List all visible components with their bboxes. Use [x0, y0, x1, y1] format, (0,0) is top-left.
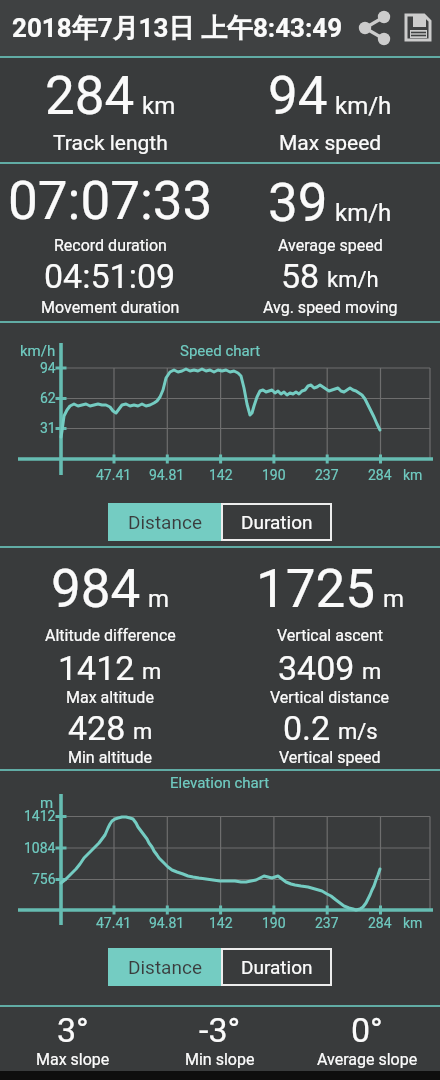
- staticText: km: [142, 92, 176, 120]
- staticText: 3°: [57, 1010, 89, 1050]
- staticText: m: [383, 585, 405, 613]
- staticText: Min slope: [185, 1050, 255, 1069]
- staticText: Vertical speed: [279, 748, 381, 767]
- staticText: Max speed: [279, 131, 382, 156]
- staticText: km: [403, 467, 423, 483]
- staticText: km/h: [335, 92, 392, 120]
- staticText: 47.41: [96, 915, 132, 931]
- staticText: 284: [368, 467, 392, 483]
- staticText: 62: [40, 390, 56, 406]
- staticText: Average slope: [317, 1050, 418, 1069]
- staticText: 94.81: [149, 915, 185, 931]
- staticText: m/s: [338, 719, 378, 745]
- staticText: 1725: [256, 558, 376, 620]
- staticText: km: [403, 915, 423, 931]
- staticText: 1412: [58, 648, 135, 688]
- staticText: 94: [40, 360, 56, 376]
- button[interactable]: [350, 6, 396, 52]
- staticText: m: [148, 585, 170, 613]
- button[interactable]: Duration: [221, 948, 332, 986]
- button[interactable]: [398, 6, 440, 52]
- staticText: m: [362, 659, 382, 685]
- staticText: 284: [368, 915, 392, 931]
- button[interactable]: Distance: [108, 948, 221, 986]
- button[interactable]: Duration: [221, 503, 332, 541]
- staticText: m: [40, 794, 54, 812]
- staticText: Vertical ascent: [277, 626, 384, 645]
- staticText: 07:07:33: [8, 170, 213, 232]
- staticText: 58: [281, 256, 320, 296]
- staticText: Movement duration: [41, 298, 180, 317]
- staticText: 94.81: [149, 467, 185, 483]
- staticText: 142: [209, 915, 233, 931]
- staticText: km/h: [335, 199, 392, 227]
- staticText: 428: [68, 708, 126, 748]
- staticText: km/h: [327, 267, 379, 293]
- staticText: Speed chart: [180, 342, 261, 360]
- staticText: m: [142, 659, 162, 685]
- staticText: Duration: [241, 956, 313, 978]
- staticText: Avg. speed moving: [263, 298, 398, 317]
- staticText: Altitude difference: [45, 626, 176, 645]
- staticText: Distance: [128, 956, 202, 978]
- staticText: 2018年7月13日 上午8:43:49: [12, 12, 343, 45]
- staticText: Max altitude: [66, 688, 154, 707]
- staticText: Max slope: [36, 1050, 110, 1069]
- staticText: 756: [32, 871, 56, 887]
- staticText: m: [133, 719, 153, 745]
- staticText: 0°: [351, 1010, 383, 1050]
- staticText: Record duration: [54, 236, 167, 255]
- button[interactable]: Distance: [108, 503, 221, 541]
- staticText: Elevation chart: [170, 774, 270, 792]
- staticText: 04:51:09: [44, 256, 176, 296]
- staticText: Distance: [128, 511, 202, 533]
- staticText: 190: [262, 467, 286, 483]
- staticText: Duration: [241, 511, 313, 533]
- staticText: 47.41: [96, 467, 132, 483]
- staticText: 142: [209, 467, 233, 483]
- staticText: 237: [315, 915, 339, 931]
- staticText: 284: [45, 65, 135, 127]
- staticText: Track length: [53, 131, 168, 156]
- staticText: 31: [40, 420, 56, 436]
- staticText: 94: [268, 65, 328, 127]
- staticText: Min altitude: [68, 748, 152, 767]
- staticText: 1412: [24, 808, 56, 824]
- staticText: 0.2: [283, 708, 331, 748]
- staticText: 984: [51, 558, 141, 620]
- staticText: Average speed: [278, 236, 383, 255]
- staticText: -3°: [199, 1010, 241, 1050]
- staticText: 190: [262, 915, 286, 931]
- staticText: km/h: [20, 342, 56, 360]
- staticText: Vertical distance: [270, 688, 390, 707]
- staticText: 39: [268, 172, 328, 234]
- staticText: 3409: [278, 648, 355, 688]
- staticText: 237: [315, 467, 339, 483]
- staticText: 1084: [24, 840, 56, 856]
